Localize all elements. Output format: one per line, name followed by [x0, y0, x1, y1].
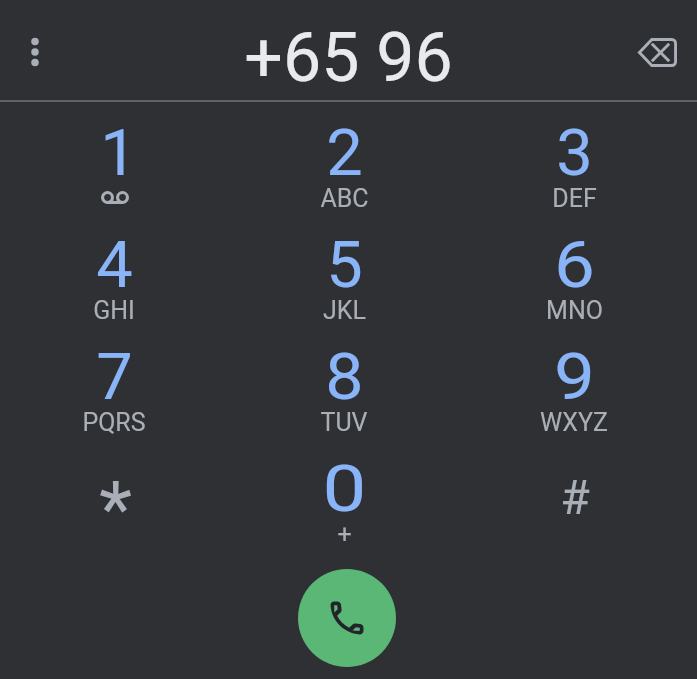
button[interactable]: 4 [0, 213, 229, 325]
staticText: ABC [320, 184, 369, 213]
staticText: WXYZ [540, 408, 608, 437]
staticText: 1 [100, 115, 137, 191]
staticText: GHI [93, 296, 135, 325]
staticText: 3 [556, 115, 593, 191]
button[interactable]: 0 [229, 437, 459, 549]
button[interactable]: 2 [229, 101, 459, 213]
staticText: JKL [323, 296, 366, 325]
button[interactable]: 5 [229, 213, 459, 325]
staticText: # [560, 469, 590, 525]
staticText: DEF [552, 184, 597, 213]
button[interactable]: More options [7, 24, 63, 80]
button[interactable]: * [0, 437, 229, 549]
button[interactable]: 1 [0, 101, 229, 213]
button[interactable]: 7 [0, 325, 229, 437]
button[interactable]: 3 [459, 101, 689, 213]
staticText: 9 [554, 339, 595, 415]
staticText: 0 [322, 451, 367, 527]
staticText: 2 [326, 115, 363, 191]
staticText: + [337, 520, 352, 549]
staticText: 4 [96, 227, 133, 303]
button[interactable]: 9 [459, 325, 689, 437]
staticText: PQRS [82, 408, 146, 437]
staticText: 5 [326, 227, 363, 303]
staticText: 8 [325, 339, 364, 415]
button[interactable]: Call [298, 569, 396, 667]
staticText: +65 96 [244, 18, 453, 98]
button[interactable]: Backspace [629, 24, 686, 81]
staticText: MNO [546, 296, 603, 325]
staticText: * [99, 464, 132, 553]
staticText: TUV [320, 408, 368, 437]
staticText: 6 [554, 227, 595, 303]
staticText: 7 [96, 339, 133, 415]
button[interactable]: 8 [229, 325, 459, 437]
button[interactable]: # [459, 437, 689, 549]
button[interactable]: 6 [459, 213, 689, 325]
